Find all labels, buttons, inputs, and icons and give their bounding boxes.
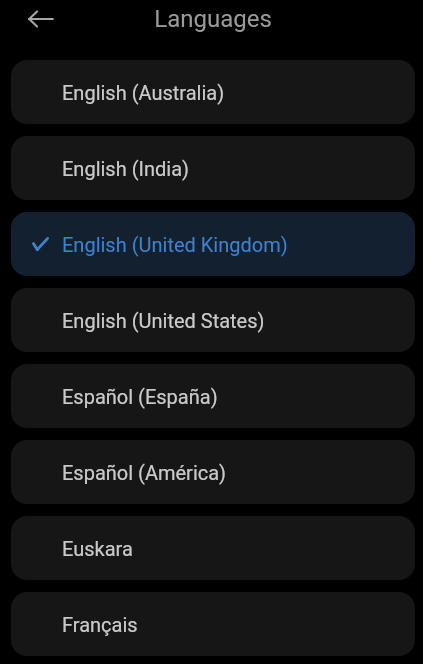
button[interactable]: Español (España) [11,364,415,428]
button[interactable]: English (United Kingdom) [11,212,415,276]
staticText: Español (América) [62,461,227,484]
staticText: Español (España) [62,385,218,408]
button[interactable]: Français [11,592,415,656]
staticText: English (Australia) [62,81,225,104]
staticText: Français [62,613,138,636]
button[interactable]: English (Australia) [11,60,415,124]
staticText: Languages [154,5,272,33]
button[interactable]: English (United States) [11,288,415,352]
staticText: English (United Kingdom) [62,233,288,256]
button[interactable]: Euskara [11,516,415,580]
button[interactable]: Español (América) [11,440,415,504]
button[interactable]: English (India) [11,136,415,200]
staticText: English (India) [62,157,189,180]
button[interactable]: Back [20,0,62,40]
staticText: Euskara [62,537,133,560]
staticText: English (United States) [62,309,265,332]
